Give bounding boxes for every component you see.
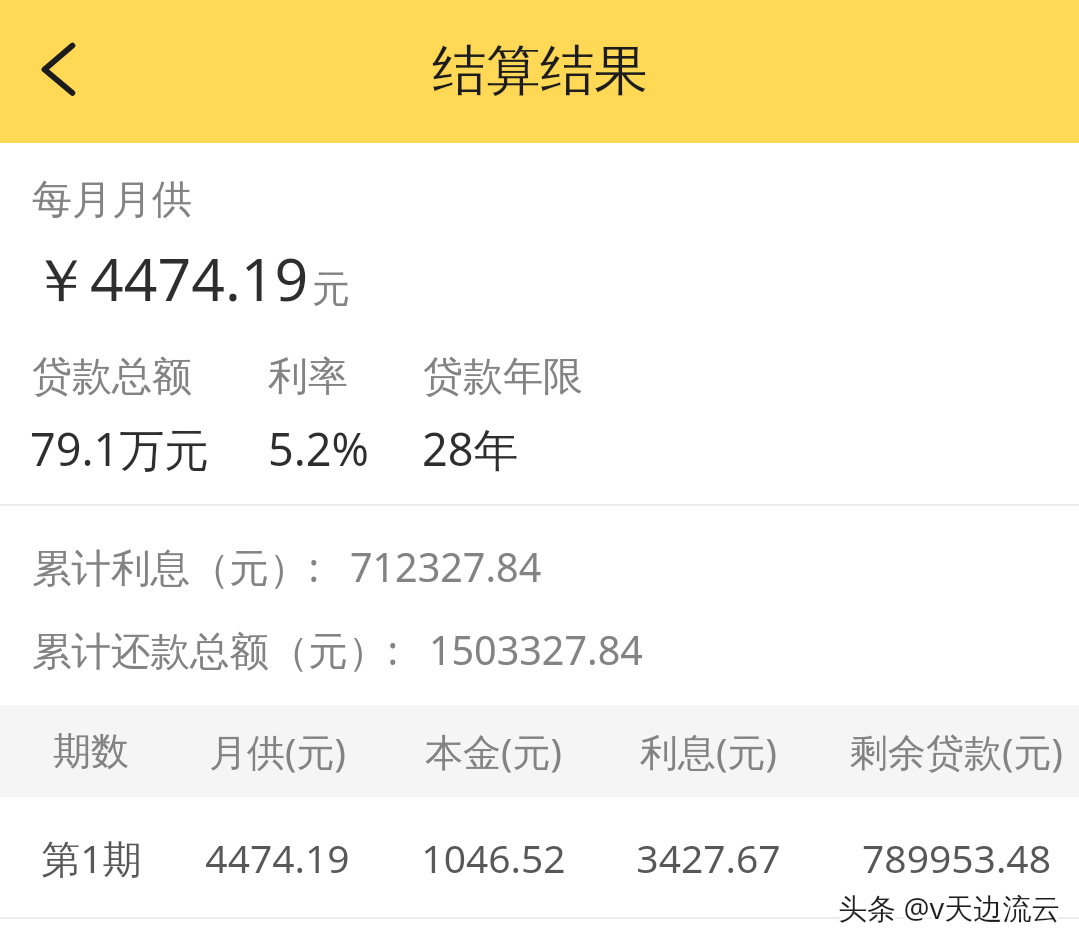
- staticText: 贷款总额: [32, 351, 192, 401]
- staticText: 28年: [422, 418, 519, 479]
- staticText: 结算结果: [432, 37, 648, 105]
- staticText: 5.2%: [268, 418, 369, 479]
- staticText: 利息(元): [640, 725, 777, 777]
- staticText: 元: [312, 265, 350, 313]
- staticText: 第1期: [41, 831, 142, 884]
- staticText: ￥4474.19: [31, 238, 309, 319]
- staticText: 头条 @v天边流云: [840, 886, 1063, 926]
- button[interactable]: Back: [20, 26, 112, 118]
- staticText: 贷款年限: [423, 351, 583, 401]
- staticText: 利率: [268, 351, 348, 401]
- staticText: 头条 @v天边流云: [838, 888, 1061, 928]
- staticText: 头条 @v天边流云: [840, 890, 1063, 930]
- staticText: 79.1万元: [30, 418, 210, 479]
- staticText: 4474.19: [205, 831, 350, 884]
- staticText: 1046.52: [421, 831, 566, 884]
- staticText: 头条 @v天边流云: [836, 890, 1059, 930]
- staticText: 剩余贷款(元): [850, 725, 1063, 777]
- button[interactable]: 第1期: [0, 797, 1079, 917]
- staticText: 累计利息（元）: 712327.84: [32, 540, 542, 594]
- staticText: 3427.67: [636, 831, 781, 884]
- staticText: 每月月供: [32, 174, 192, 224]
- staticText: 本金(元): [425, 725, 562, 777]
- staticText: 头条 @v天边流云: [836, 886, 1059, 926]
- staticText: 累计还款总额（元）: 1503327.84: [32, 623, 643, 677]
- staticText: 期数: [53, 727, 129, 775]
- staticText: 月供(元): [209, 725, 346, 777]
- staticText: 789953.48: [862, 831, 1051, 884]
